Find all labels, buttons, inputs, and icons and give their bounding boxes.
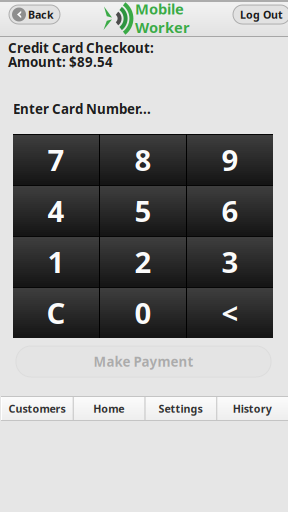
button[interactable]: Home: [73, 396, 145, 421]
staticText: Worker: [135, 17, 190, 37]
button[interactable]: History: [216, 396, 288, 421]
staticText: Back: [28, 7, 54, 22]
button[interactable]: 5: [100, 185, 186, 236]
staticText: 4: [47, 191, 64, 230]
button[interactable]: <: [187, 287, 273, 338]
staticText: Amount: $89.54: [8, 53, 113, 71]
button[interactable]: Back: [9, 5, 60, 24]
button[interactable]: 4: [13, 185, 99, 236]
button[interactable]: 7: [13, 134, 99, 185]
button[interactable]: Make Payment: [16, 346, 271, 377]
staticText: 3: [221, 242, 238, 281]
staticText: Mobile: [135, 0, 184, 18]
staticText: Customers: [8, 401, 65, 416]
button[interactable]: 1: [13, 236, 99, 287]
staticText: C: [46, 293, 65, 332]
staticText: 8: [134, 140, 151, 179]
button[interactable]: Log Out: [233, 5, 288, 24]
staticText: 2: [134, 242, 151, 281]
button[interactable]: 8: [100, 134, 186, 185]
button[interactable]: 2: [100, 236, 186, 287]
staticText: 1: [47, 242, 64, 281]
staticText: 0: [134, 293, 151, 332]
staticText: Enter Card Number...: [13, 100, 151, 118]
staticText: 9: [221, 140, 238, 179]
button[interactable]: Settings: [144, 396, 216, 421]
button[interactable]: C: [13, 287, 99, 338]
button[interactable]: 9: [187, 134, 273, 185]
staticText: <: [221, 293, 238, 332]
staticText: Log Out: [240, 7, 283, 22]
staticText: 7: [47, 140, 64, 179]
staticText: 6: [221, 191, 238, 230]
button[interactable]: Customers: [1, 396, 73, 421]
button[interactable]: 6: [187, 185, 273, 236]
staticText: History: [233, 401, 272, 416]
staticText: Make Payment: [93, 353, 193, 370]
button[interactable]: 3: [187, 236, 273, 287]
staticText: 5: [134, 191, 151, 230]
button[interactable]: 0: [100, 287, 186, 338]
staticText: Credit Card Checkout:: [8, 39, 154, 57]
staticText: Home: [93, 401, 124, 416]
staticText: Settings: [158, 401, 202, 416]
